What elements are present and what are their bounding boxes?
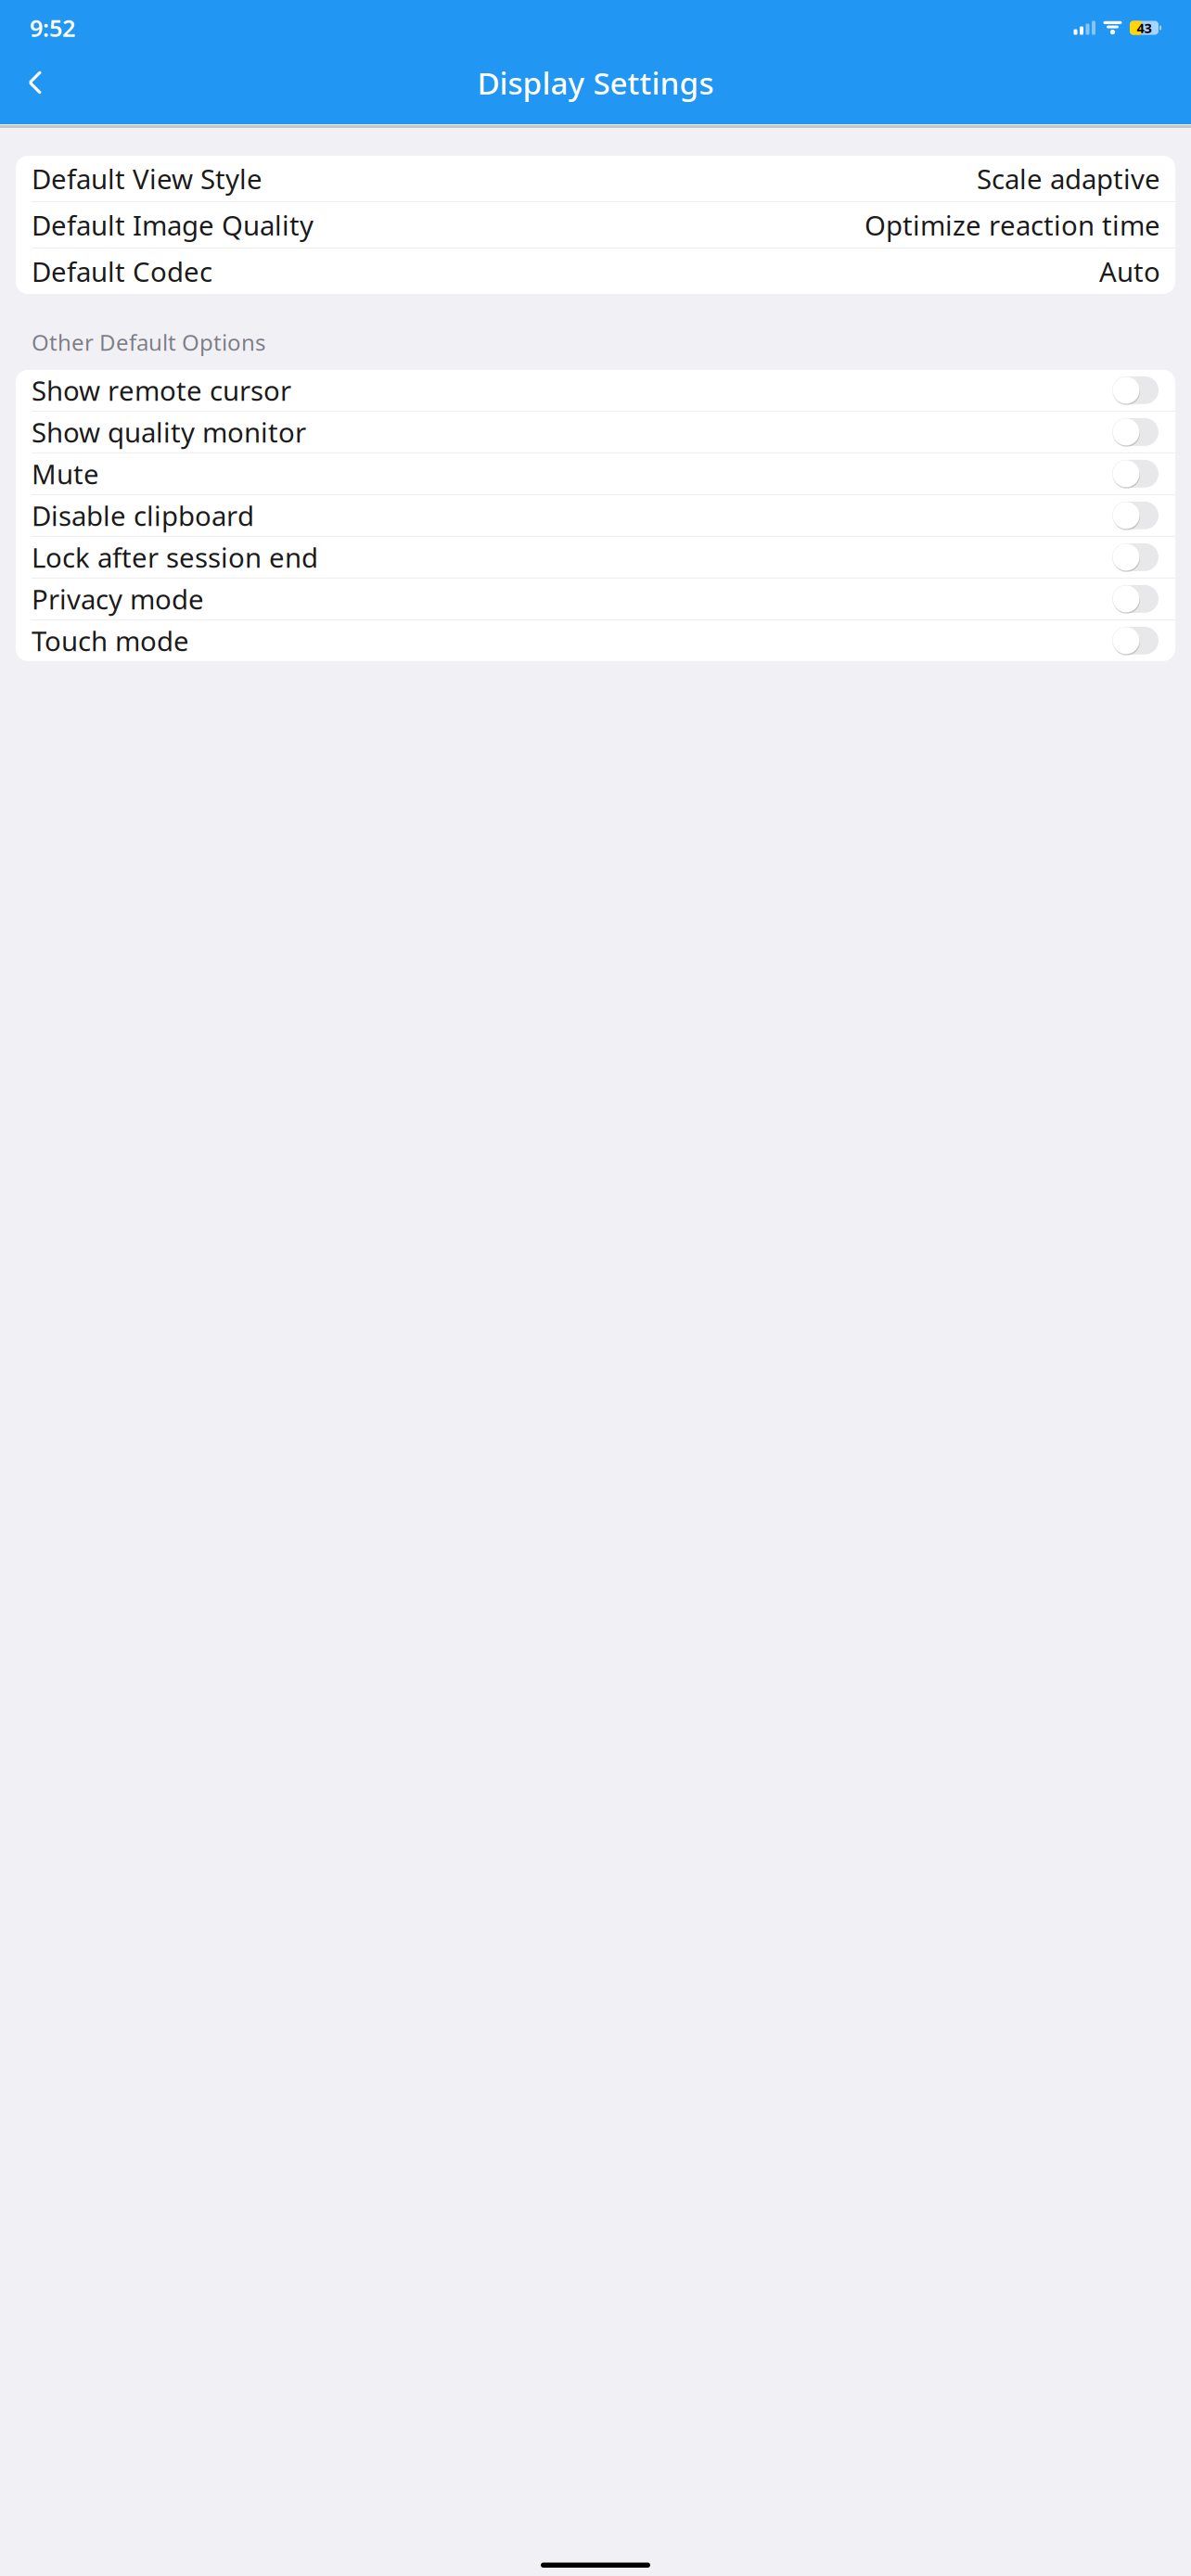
staticText: Optimize reaction time [864, 207, 1160, 243]
staticText: Default Image Quality [32, 207, 314, 243]
button[interactable]: Show quality monitor [16, 412, 1175, 453]
staticText: Mute [32, 456, 99, 492]
staticText: Default Codec [32, 253, 212, 289]
button[interactable]: Lock after session end [16, 537, 1175, 579]
button[interactable]: Default Image Quality [16, 202, 1175, 249]
staticText: Auto [1099, 253, 1160, 289]
staticText: Touch mode [32, 623, 189, 659]
staticText: Lock after session end [32, 539, 318, 575]
button[interactable]: Back [9, 57, 61, 108]
staticText: Show remote cursor [32, 372, 291, 408]
staticText: 9:52 [30, 12, 75, 43]
button[interactable]: Default View Style [16, 156, 1175, 202]
button[interactable]: Default Codec [16, 249, 1175, 294]
button[interactable]: Touch mode [16, 620, 1175, 661]
staticText: Show quality monitor [32, 414, 306, 450]
staticText: 43 [1137, 19, 1152, 37]
button[interactable]: Disable clipboard [16, 495, 1175, 537]
staticText: Default View Style [32, 160, 263, 197]
staticText: Other Default Options [32, 327, 265, 357]
button[interactable]: Privacy mode [16, 579, 1175, 620]
staticText: Privacy mode [32, 581, 204, 617]
staticText: Display Settings [477, 62, 714, 103]
button[interactable]: Show remote cursor [16, 370, 1175, 412]
staticText: Disable clipboard [32, 497, 254, 534]
staticText: Scale adaptive [977, 160, 1160, 197]
button[interactable]: Mute [16, 453, 1175, 495]
